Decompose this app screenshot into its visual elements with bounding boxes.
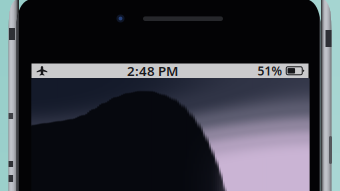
staticText: 2:48 PM	[127, 62, 178, 80]
staticText: 51%	[257, 63, 282, 79]
